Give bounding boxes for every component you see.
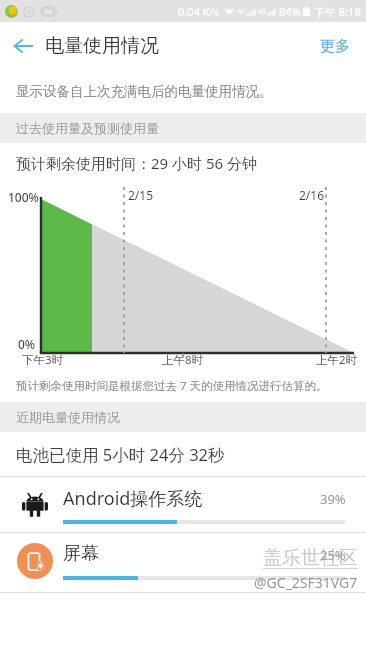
button[interactable]: 屏幕: [0, 533, 366, 588]
button[interactable]: 返回: [4, 27, 42, 65]
staticText: 预计剩余使用时间是根据您过去 7 天的使用情况进行估算的。: [16, 378, 328, 394]
button[interactable]: 更多: [312, 31, 358, 62]
staticText: 4G: [258, 7, 267, 16]
staticText: 0.04 K/s: [178, 4, 219, 19]
staticText: 电池已使用 5小时 24分 32秒: [16, 443, 225, 466]
staticText: 下午3时: [22, 352, 64, 368]
staticText: 4G: [238, 7, 247, 16]
staticText: 2/15: [128, 187, 154, 203]
staticText: 84: [44, 7, 53, 17]
staticText: 上午2时: [316, 352, 358, 368]
staticText: 上午8时: [162, 352, 204, 368]
staticText: @GC_2SF31VG7: [254, 573, 358, 592]
staticText: 下午 8:18: [314, 4, 361, 19]
staticText: Android操作系统: [63, 486, 203, 511]
staticText: 屏幕: [63, 542, 99, 565]
staticText: 0%: [18, 336, 36, 352]
staticText: 预计剩余使用时间：29 小时 56 分钟: [16, 153, 258, 173]
button[interactable]: Android操作系统: [0, 477, 366, 532]
staticText: 更多: [320, 37, 350, 56]
staticText: 25%: [320, 546, 346, 564]
staticText: 2/16: [299, 187, 325, 203]
staticText: 84%: [279, 4, 301, 19]
staticText: 100%: [8, 189, 39, 205]
staticText: 电量使用情况: [45, 34, 159, 58]
staticText: 39%: [320, 490, 346, 508]
staticText: 显示设备自上次充满电后的电量使用情况。: [16, 83, 273, 100]
staticText: 过去使用量及预测使用量: [16, 120, 159, 136]
staticText: 近期电量使用情况: [16, 409, 120, 425]
staticText: 盖乐世社区: [263, 546, 358, 570]
